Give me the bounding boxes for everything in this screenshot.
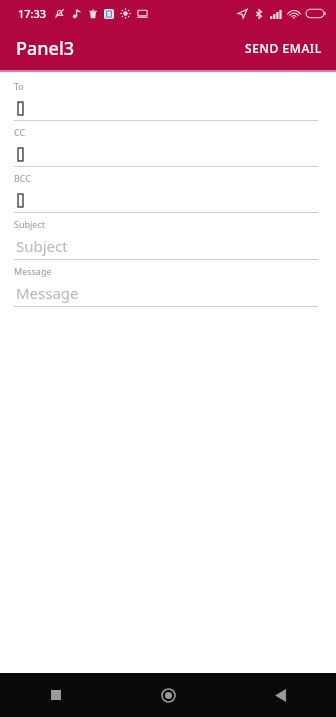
staticText: BCC xyxy=(14,172,32,184)
staticText: Subject xyxy=(14,218,46,230)
button[interactable]: Subject xyxy=(0,213,336,260)
staticText: Subject xyxy=(16,236,68,256)
staticText: Message xyxy=(16,283,79,303)
button[interactable]: Recents xyxy=(0,673,112,717)
staticText: Panel3 xyxy=(16,36,75,61)
staticText: CC xyxy=(14,126,26,138)
button[interactable]: To xyxy=(0,75,336,121)
staticText: To xyxy=(14,80,24,92)
button[interactable]: SEND EMAIL xyxy=(231,30,336,66)
button[interactable]: Back xyxy=(224,673,336,717)
button[interactable]: BCC xyxy=(0,167,336,213)
button[interactable]: Message xyxy=(0,260,336,307)
button[interactable]: Home xyxy=(112,673,224,717)
staticText: Message xyxy=(14,265,52,277)
staticText: SEND EMAIL xyxy=(245,40,322,56)
button[interactable]: CC xyxy=(0,121,336,167)
staticText: 17:33 xyxy=(18,6,47,21)
